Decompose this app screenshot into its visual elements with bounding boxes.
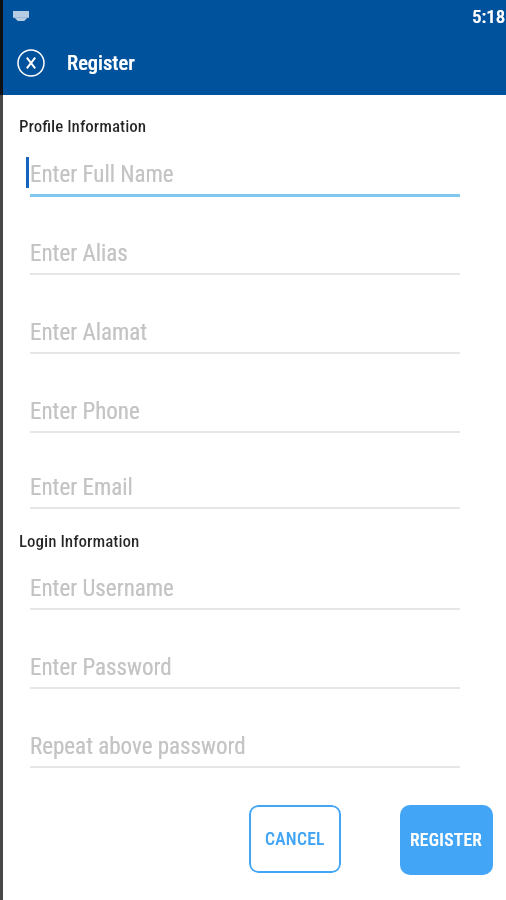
- button[interactable]: Enter Password: [30, 647, 460, 691]
- button[interactable]: Enter Email: [30, 467, 460, 511]
- staticText: Enter Phone: [30, 398, 140, 425]
- button[interactable]: Enter Alamat: [30, 312, 460, 356]
- staticText: Repeat above password: [30, 733, 246, 760]
- button[interactable]: Enter Full Name: [30, 154, 460, 198]
- button[interactable]: REGISTER: [400, 805, 493, 875]
- button[interactable]: Enter Username: [30, 568, 460, 612]
- staticText: Login Information: [19, 531, 140, 551]
- button[interactable]: Enter Phone: [30, 391, 460, 435]
- staticText: Enter Alamat: [30, 319, 148, 346]
- staticText: REGISTER: [410, 830, 483, 851]
- staticText: Profile Information: [19, 116, 147, 136]
- staticText: Enter Username: [30, 575, 174, 602]
- staticText: Enter Alias: [30, 240, 128, 267]
- other: Status icon: [13, 11, 29, 21]
- button[interactable]: Close: [14, 46, 48, 80]
- button[interactable]: Enter Alias: [30, 233, 460, 277]
- staticText: Enter Email: [30, 474, 133, 501]
- staticText: CANCEL: [265, 829, 325, 850]
- staticText: Enter Full Name: [30, 161, 174, 188]
- staticText: Enter Password: [30, 654, 172, 681]
- button[interactable]: Repeat above password: [30, 726, 460, 770]
- staticText: Register: [67, 51, 135, 75]
- button[interactable]: CANCEL: [249, 805, 341, 873]
- staticText: 5:18: [472, 5, 506, 27]
